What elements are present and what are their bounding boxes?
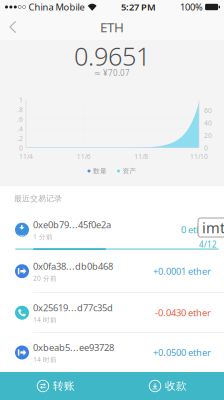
staticText: imtoken <box>202 218 224 237</box>
staticText: 转账 <box>53 379 75 392</box>
staticText: +0.0001 ether <box>153 265 211 277</box>
staticText: 资产 <box>122 167 136 175</box>
staticText: +0.0500 ether <box>153 346 211 359</box>
staticText: 收款 <box>165 379 187 392</box>
staticText: 0xe0b79...45f0e2a <box>33 218 111 231</box>
staticText: 11/4 <box>19 152 33 161</box>
staticText: 11/8 <box>134 152 148 161</box>
staticText: 0.9651 <box>74 39 150 73</box>
staticText: .4 <box>17 124 23 133</box>
staticText: 0x25619...d77c35d <box>33 301 113 314</box>
staticText: 4/12 <box>199 239 217 250</box>
button[interactable]: 转账 <box>0 372 112 400</box>
button[interactable]: Back <box>0 15 31 39</box>
staticText: 1 <box>19 96 23 104</box>
staticText: 最近交易记录 <box>14 194 62 204</box>
button[interactable]: 收款 <box>112 372 224 400</box>
staticText: 0xbeab5...ee93728 <box>33 341 114 353</box>
staticText: ETH <box>100 18 124 36</box>
staticText: 11/10 <box>190 152 208 161</box>
staticText: China Mobile <box>29 1 85 13</box>
button[interactable]: 0xbeab5...ee93728 <box>0 333 224 372</box>
staticText: 14 时前 <box>33 355 57 364</box>
staticText: -0.0430 ether <box>155 306 211 319</box>
button[interactable]: 0xe0b79...45f0e2a <box>0 211 224 248</box>
staticText: 0 <box>19 144 23 152</box>
staticText: 5:27 PM <box>121 1 156 13</box>
staticText: 20 <box>204 131 212 140</box>
button[interactable]: 0x0fa38...db0b468 <box>0 250 224 292</box>
staticText: .8 <box>17 105 23 114</box>
staticText: 0 ether <box>181 223 211 236</box>
staticText: .6 <box>17 115 23 124</box>
staticText: 100% <box>180 1 203 13</box>
staticText: 11/6 <box>77 152 91 161</box>
staticText: 14 时前 <box>33 315 57 324</box>
staticText: 数量 <box>93 167 107 175</box>
staticText: 1 分前 <box>33 232 53 241</box>
button[interactable]: 0x25619...d77c35d <box>0 293 224 332</box>
staticText: ≈ ¥70.07 <box>94 68 130 78</box>
staticText: 0 <box>204 144 208 152</box>
staticText: 20 分前 <box>33 274 57 283</box>
staticText: 0x0fa38...db0b468 <box>33 260 113 272</box>
staticText: 60 <box>204 106 212 115</box>
staticText: .2 <box>17 134 23 143</box>
staticText: 40 <box>204 119 212 127</box>
